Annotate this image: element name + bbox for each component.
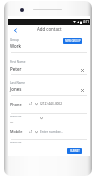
staticText: Enter number... — [40, 130, 63, 134]
staticText: (212) 443-3002 — [40, 102, 62, 106]
staticText: 4:11 — [83, 20, 89, 24]
button[interactable]: Back — [12, 27, 19, 34]
staticText: SUBMIT — [70, 149, 80, 153]
staticText: Phone — [10, 102, 22, 107]
staticText: Work — [10, 43, 22, 49]
staticText: no. — [10, 120, 14, 123]
staticText: +1 — [29, 130, 33, 134]
staticText: Group — [10, 38, 19, 42]
staticText: Peter — [10, 66, 22, 72]
staticText: Add contact — [37, 26, 62, 32]
staticText: Mobile — [10, 129, 23, 134]
staticText: Last Name — [10, 81, 26, 85]
button[interactable]: Clear — [80, 88, 85, 93]
button[interactable]: SUBMIT — [67, 148, 82, 154]
button[interactable]: NEW GROUP — [63, 38, 82, 44]
staticText: First Name — [10, 60, 26, 64]
button[interactable]: Clear — [80, 68, 85, 73]
staticText: Jones — [10, 86, 22, 92]
staticText: NEW GROUP — [65, 39, 81, 43]
staticText: Search list — [10, 140, 22, 143]
staticText: +1 — [29, 102, 33, 106]
staticText: Search list — [10, 114, 22, 117]
